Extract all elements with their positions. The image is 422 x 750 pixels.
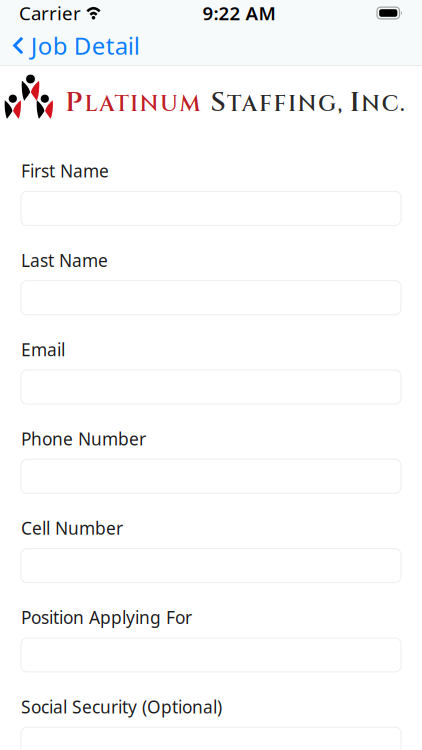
- staticText: Phone Number: [21, 427, 146, 450]
- button[interactable]: Job Detail: [0, 26, 152, 65]
- staticText: Cell Number: [21, 516, 123, 539]
- staticText: 9:22 AM: [202, 1, 275, 25]
- staticText: Job Detail: [31, 30, 140, 61]
- staticText: Social Security (Optional): [21, 695, 222, 718]
- staticText: Email: [21, 338, 65, 361]
- staticText: Carrier: [19, 1, 81, 25]
- staticText: Last Name: [21, 249, 108, 272]
- staticText: PLATINUM STAFFING, INC.: [65, 84, 405, 121]
- staticText: Position Applying For: [21, 606, 192, 629]
- staticText: First Name: [21, 159, 109, 182]
